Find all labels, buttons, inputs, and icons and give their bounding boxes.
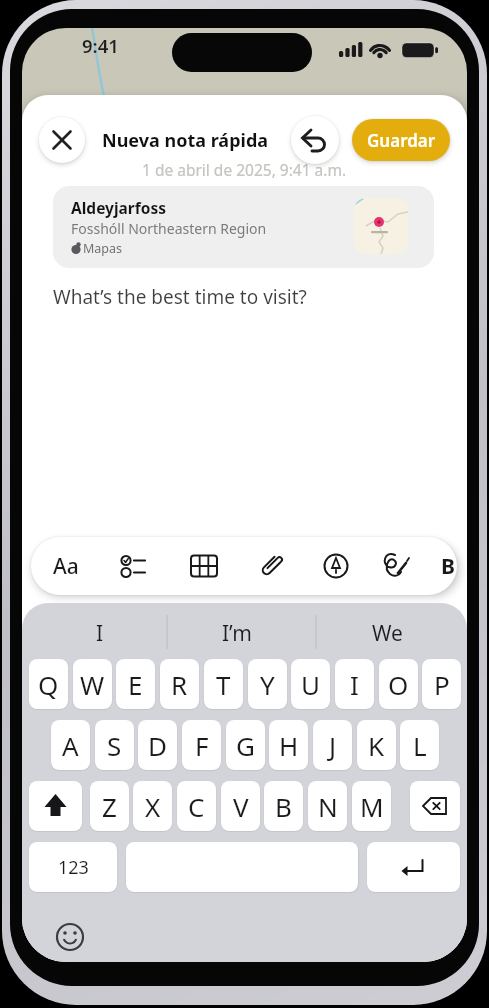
button[interactable] — [367, 842, 460, 892]
button[interactable] — [111, 545, 155, 587]
staticText: Aldeyjarfoss — [71, 197, 167, 218]
staticText: A — [62, 728, 79, 763]
button[interactable] — [56, 923, 84, 951]
button[interactable]: G — [226, 720, 265, 770]
button[interactable]: M — [352, 781, 391, 831]
button[interactable]: V — [221, 781, 260, 831]
staticText: O — [388, 667, 409, 702]
button[interactable]: Y — [248, 659, 287, 709]
button[interactable]: T — [204, 659, 243, 709]
button[interactable]: Q — [29, 659, 68, 709]
staticText: X — [145, 789, 161, 824]
staticText: I’m — [222, 619, 252, 648]
button[interactable] — [375, 545, 419, 587]
staticText: Aa — [53, 552, 79, 581]
staticText: C — [188, 789, 205, 824]
button[interactable]: A — [51, 720, 90, 770]
button[interactable]: I — [335, 659, 374, 709]
staticText: 123 — [58, 855, 89, 880]
staticText: Nueva nota rápida — [102, 128, 269, 153]
staticText: P — [434, 667, 450, 702]
button[interactable]: Z — [90, 781, 129, 831]
button[interactable]: B — [264, 781, 303, 831]
staticText: Z — [102, 789, 117, 824]
staticText: B — [275, 789, 292, 824]
button[interactable]: S — [95, 720, 134, 770]
staticText: W — [80, 667, 105, 702]
staticText: 9:41 — [82, 33, 119, 58]
button[interactable] — [410, 781, 460, 831]
button[interactable]: Aldeyjarfoss — [53, 186, 434, 268]
button[interactable]: P — [422, 659, 461, 709]
staticText: Fosshóll Northeastern Region — [71, 219, 267, 238]
staticText: 1 de abril de 2025, 9:41 a.m. — [142, 159, 347, 180]
staticText: F — [195, 728, 209, 763]
staticText: K — [368, 728, 385, 763]
button[interactable]: C — [177, 781, 216, 831]
staticText: I — [96, 619, 104, 648]
button[interactable]: N — [308, 781, 347, 831]
button[interactable]: Aa — [42, 545, 90, 587]
staticText: V — [233, 789, 249, 824]
staticText: H — [279, 728, 299, 763]
button[interactable]: D — [138, 720, 177, 770]
button[interactable]: X — [133, 781, 172, 831]
staticText: G — [236, 728, 255, 763]
button[interactable] — [126, 842, 358, 892]
button[interactable] — [29, 781, 82, 831]
button[interactable]: J — [313, 720, 352, 770]
button[interactable]: L — [400, 720, 439, 770]
button[interactable]: E — [116, 659, 155, 709]
button[interactable] — [249, 545, 293, 587]
button[interactable]: H — [269, 720, 308, 770]
staticText: J — [329, 728, 337, 763]
staticText: M — [360, 789, 384, 824]
staticText: S — [107, 728, 122, 763]
button[interactable]: O — [379, 659, 418, 709]
staticText: U — [301, 667, 321, 702]
button[interactable] — [39, 117, 85, 163]
button[interactable] — [314, 545, 358, 587]
staticText: Mapas — [83, 240, 123, 257]
button[interactable] — [291, 116, 339, 164]
button[interactable]: K — [357, 720, 396, 770]
staticText: What’s the best time to visit? — [53, 284, 307, 310]
button[interactable]: W — [73, 659, 112, 709]
staticText: Guardar — [367, 129, 436, 152]
button[interactable]: 123 — [29, 842, 117, 892]
staticText: L — [413, 728, 427, 763]
staticText: D — [148, 728, 167, 763]
staticText: E — [128, 667, 143, 702]
button[interactable] — [182, 545, 226, 587]
staticText: I — [350, 667, 359, 702]
staticText: B — [441, 552, 455, 581]
staticText: Y — [260, 667, 275, 702]
staticText: N — [318, 789, 338, 824]
button[interactable]: Guardar — [352, 119, 450, 161]
staticText: We — [372, 619, 403, 648]
button[interactable]: F — [182, 720, 221, 770]
button[interactable]: B — [433, 545, 457, 587]
staticText: T — [216, 667, 231, 702]
button[interactable]: R — [160, 659, 199, 709]
button[interactable]: U — [291, 659, 330, 709]
staticText: Q — [38, 667, 59, 702]
staticText: R — [171, 667, 188, 702]
